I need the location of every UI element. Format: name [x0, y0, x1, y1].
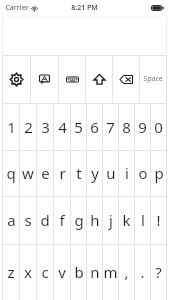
staticText: c — [41, 262, 49, 282]
staticText: u — [106, 163, 116, 183]
button[interactable]: q — [3, 150, 19, 196]
button[interactable]: . — [135, 244, 150, 300]
staticText: j — [109, 210, 113, 230]
staticText: l — [141, 210, 145, 230]
button[interactable]: ? — [151, 244, 166, 300]
staticText: y — [91, 163, 99, 183]
button[interactable]: g — [71, 196, 86, 244]
staticText: ? — [155, 262, 162, 282]
button[interactable]: Keyboard layout — [59, 55, 85, 103]
button[interactable]: 9 — [135, 103, 150, 150]
button[interactable]: 3 — [37, 103, 53, 150]
button[interactable]: r — [54, 150, 70, 196]
staticText: 9 — [138, 117, 147, 137]
button[interactable]: b — [71, 244, 86, 300]
staticText: h — [90, 210, 100, 230]
staticText: o — [138, 163, 148, 183]
staticText: d — [40, 210, 50, 230]
staticText: f — [59, 210, 65, 230]
button[interactable]: 0 — [151, 103, 166, 150]
button[interactable]: e — [37, 150, 53, 196]
staticText: 4 — [58, 117, 67, 137]
button[interactable]: w — [20, 150, 36, 196]
button[interactable]: k — [119, 196, 134, 244]
staticText: g — [74, 210, 84, 230]
staticText: s — [24, 210, 32, 230]
button[interactable]: t — [71, 150, 86, 196]
staticText: v — [58, 262, 66, 282]
staticText: x — [24, 262, 32, 282]
staticText: ! — [156, 210, 161, 230]
button[interactable]: 7 — [103, 103, 118, 150]
staticText: b — [74, 262, 84, 282]
staticText: 5 — [74, 117, 83, 137]
button[interactable]: 8 — [119, 103, 134, 150]
button[interactable]: n — [87, 244, 102, 300]
staticText: 3 — [41, 117, 50, 137]
button[interactable]: p — [151, 150, 166, 196]
button[interactable]: 1 — [3, 103, 19, 150]
button[interactable]: a — [3, 196, 19, 244]
staticText: m — [103, 262, 118, 282]
staticText: w — [22, 163, 34, 183]
button[interactable]: Delete — [113, 55, 139, 103]
staticText: k — [122, 210, 131, 230]
staticText: 2 — [24, 117, 33, 137]
staticText: e — [41, 163, 50, 183]
staticText: 8 — [122, 117, 131, 137]
button[interactable]: 5 — [71, 103, 86, 150]
staticText: Space — [143, 74, 163, 84]
staticText: 1 — [7, 117, 16, 137]
button[interactable]: j — [103, 196, 118, 244]
staticText: 8:21 PM — [71, 3, 98, 13]
staticText: q — [6, 163, 16, 183]
button[interactable]: l — [135, 196, 150, 244]
staticText: 7 — [106, 117, 115, 137]
button[interactable]: m — [103, 244, 118, 300]
button[interactable]: u — [103, 150, 118, 196]
button[interactable]: , — [119, 244, 134, 300]
button[interactable]: f — [54, 196, 70, 244]
button[interactable]: z — [3, 244, 19, 300]
staticText: r — [59, 163, 66, 183]
staticText: t — [76, 163, 82, 183]
staticText: Carrier — [5, 3, 29, 13]
button[interactable]: 2 — [20, 103, 36, 150]
button[interactable]: 4 — [54, 103, 70, 150]
button[interactable]: ! — [151, 196, 166, 244]
button[interactable]: x — [20, 244, 36, 300]
button[interactable]: Shift — [86, 55, 112, 103]
staticText: , — [124, 262, 129, 282]
button[interactable]: h — [87, 196, 102, 244]
button[interactable]: s — [20, 196, 36, 244]
staticText: z — [7, 262, 15, 282]
button[interactable]: o — [135, 150, 150, 196]
button[interactable]: Settings — [3, 55, 30, 103]
staticText: 0 — [154, 117, 163, 137]
button[interactable]: y — [87, 150, 102, 196]
button[interactable]: i — [119, 150, 134, 196]
button[interactable]: Space — [140, 55, 166, 103]
staticText: p — [154, 163, 164, 183]
button[interactable]: c — [37, 244, 53, 300]
staticText: 6 — [90, 117, 99, 137]
staticText: n — [90, 262, 100, 282]
button[interactable]: Input language — [31, 55, 58, 103]
button[interactable]: 6 — [87, 103, 102, 150]
button[interactable]: d — [37, 196, 53, 244]
staticText: i — [125, 163, 129, 183]
button[interactable]: v — [54, 244, 70, 300]
staticText: a — [7, 210, 16, 230]
staticText: . — [140, 262, 145, 282]
